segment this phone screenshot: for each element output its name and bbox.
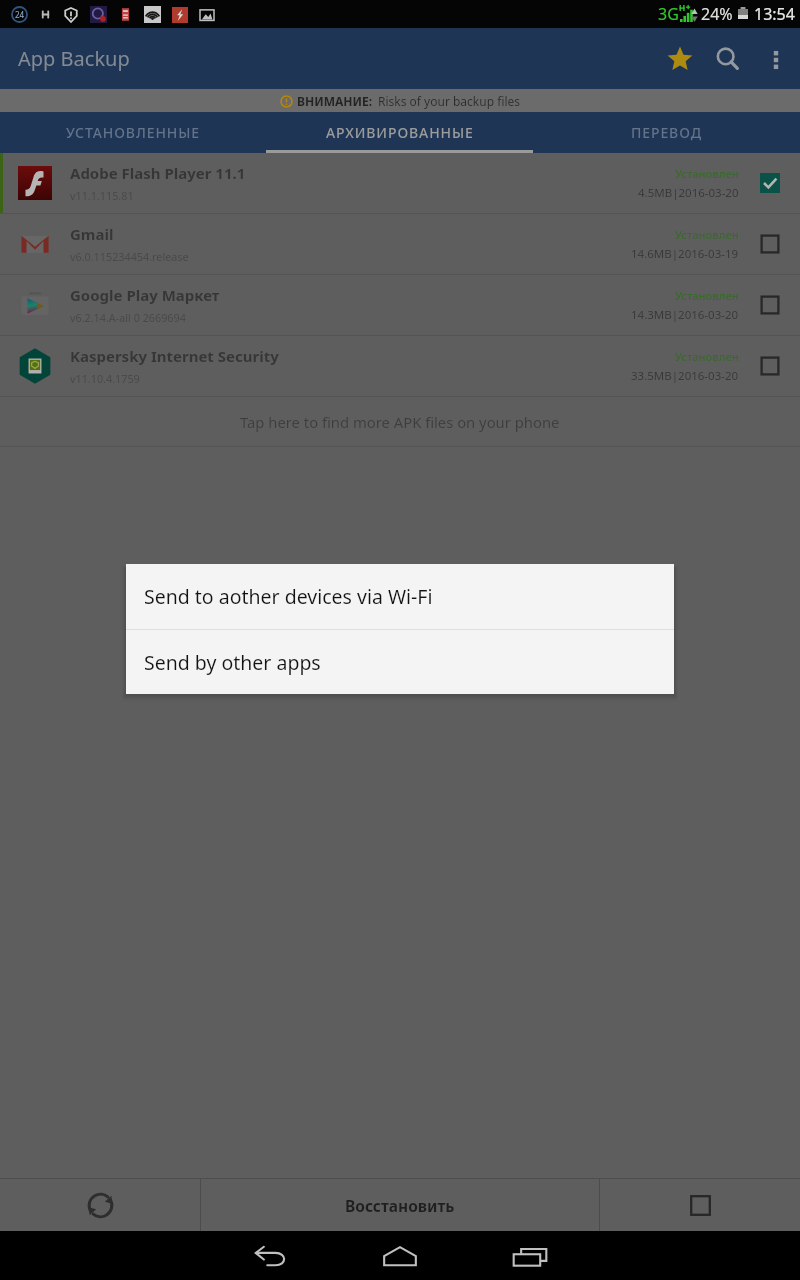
button[interactable]: Search xyxy=(704,35,752,83)
staticText: 13:54 xyxy=(754,3,795,25)
staticText: v6.2.14.A-all 0 2669694 xyxy=(70,310,186,325)
button[interactable]: Select app xyxy=(752,348,788,384)
button[interactable]: УСТАНОВЛЕННЫЕ xyxy=(0,112,266,153)
staticText: v11.10.4.1759 xyxy=(70,371,140,386)
staticText: 24% xyxy=(701,3,733,25)
staticText: 3G xyxy=(658,3,679,25)
button[interactable]: Восстановить xyxy=(201,1179,599,1231)
button[interactable]: Send by other apps xyxy=(126,630,674,694)
staticText: v6.0.115234454.release xyxy=(70,249,189,264)
button[interactable]: Gmail xyxy=(0,214,800,274)
staticText: Send by other apps xyxy=(144,649,321,676)
staticText: Восстановить xyxy=(345,1195,455,1216)
button[interactable]: Adobe Flash Player 11.1 xyxy=(0,153,800,213)
staticText: 4.5MB|2016-03-20 xyxy=(638,185,739,201)
button[interactable]: Select app xyxy=(752,287,788,323)
staticText: Установлен xyxy=(675,166,739,181)
staticText: 33.5MB|2016-03-20 xyxy=(631,368,739,384)
staticText: ПЕРЕВОД xyxy=(631,123,702,142)
button[interactable]: ПЕРЕВОД xyxy=(533,112,800,153)
staticText: ВНИМАНИЕ: xyxy=(297,93,373,109)
staticText: Adobe Flash Player 11.1 xyxy=(70,163,246,183)
staticText: Risks of your backup files xyxy=(378,93,520,109)
staticText: Google Play Маркет xyxy=(70,285,220,305)
staticText: АРХИВИРОВАННЫЕ xyxy=(326,123,474,142)
staticText: Установлен xyxy=(675,349,739,364)
staticText: Send to aother devices via Wi-Fi xyxy=(144,583,433,610)
button[interactable]: Select app xyxy=(752,226,788,262)
staticText: Gmail xyxy=(70,224,114,244)
button[interactable]: Back xyxy=(205,1231,335,1280)
staticText: 24 xyxy=(15,9,25,20)
staticText: Установлен xyxy=(675,288,739,303)
button[interactable]: Kaspersky Internet Security xyxy=(0,336,800,396)
staticText: v11.1.115.81 xyxy=(70,188,134,203)
button[interactable]: АРХИВИРОВАННЫЕ xyxy=(266,112,533,153)
staticText: Tap here to find more APK files on your … xyxy=(240,412,560,432)
button[interactable]: Favorites xyxy=(656,35,704,83)
button[interactable]: Tap here to find more APK files on your … xyxy=(0,397,800,446)
staticText: УСТАНОВЛЕННЫЕ xyxy=(66,123,201,142)
button[interactable]: Refresh xyxy=(0,1179,200,1231)
button[interactable]: Select app xyxy=(752,165,788,201)
staticText: Установлен xyxy=(675,227,739,242)
staticText: 14.3MB|2016-03-20 xyxy=(631,307,739,323)
button[interactable]: Google Play Маркет xyxy=(0,275,800,335)
button[interactable]: Send to aother devices via Wi-Fi xyxy=(126,564,674,629)
button[interactable]: Recents xyxy=(465,1231,595,1280)
button[interactable]: Select all xyxy=(600,1179,800,1231)
button[interactable]: Home xyxy=(335,1231,465,1280)
staticText: 14.6MB|2016-03-19 xyxy=(631,246,739,262)
staticText: Kaspersky Internet Security xyxy=(70,346,279,366)
button[interactable]: More options xyxy=(752,35,800,83)
staticText: App Backup xyxy=(18,45,130,72)
